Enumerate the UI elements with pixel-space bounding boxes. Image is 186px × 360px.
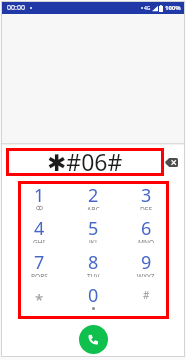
button[interactable]: 8 xyxy=(70,250,116,280)
staticText: WXYZ xyxy=(137,272,155,277)
button[interactable]: 9 xyxy=(123,250,169,280)
button[interactable]: 4 xyxy=(16,216,62,246)
button[interactable]: 7 xyxy=(16,250,62,280)
staticText: PQRS xyxy=(31,272,48,277)
staticText: * xyxy=(35,289,44,309)
staticText: 4G xyxy=(144,5,151,12)
staticText: 3 xyxy=(141,183,152,208)
staticText: 00:00 xyxy=(7,3,25,13)
button[interactable]: # xyxy=(123,283,169,313)
button[interactable]: 3 xyxy=(123,183,169,213)
staticText: 0 xyxy=(88,283,99,308)
button[interactable]: 5 xyxy=(70,216,116,246)
button[interactable]: 6 xyxy=(123,216,169,246)
staticText: 6 xyxy=(141,216,152,241)
button[interactable]: Call xyxy=(79,325,108,354)
staticText: ✱#06# xyxy=(47,146,123,174)
staticText: MNO xyxy=(138,238,155,243)
button[interactable]: * xyxy=(16,283,62,313)
staticText: TUV xyxy=(87,272,100,277)
staticText: 9 xyxy=(141,250,152,275)
staticText: 1 xyxy=(34,183,45,208)
button[interactable]: 0 xyxy=(70,283,116,313)
staticText: ABC xyxy=(87,205,100,210)
staticText: 8 xyxy=(88,250,99,275)
button[interactable]: 1 xyxy=(16,183,62,213)
staticText: # xyxy=(143,288,150,302)
staticText: 100% xyxy=(165,4,181,12)
button[interactable]: Backspace xyxy=(165,158,178,167)
staticText: 5 xyxy=(88,216,99,241)
staticText: JKL xyxy=(89,238,99,243)
staticText: DEF xyxy=(140,205,152,210)
staticText: GHI xyxy=(33,238,45,243)
staticText: 4 xyxy=(34,216,45,241)
button[interactable]: 2 xyxy=(70,183,116,213)
staticText: 7 xyxy=(34,250,45,275)
staticText: 2 xyxy=(88,183,99,208)
